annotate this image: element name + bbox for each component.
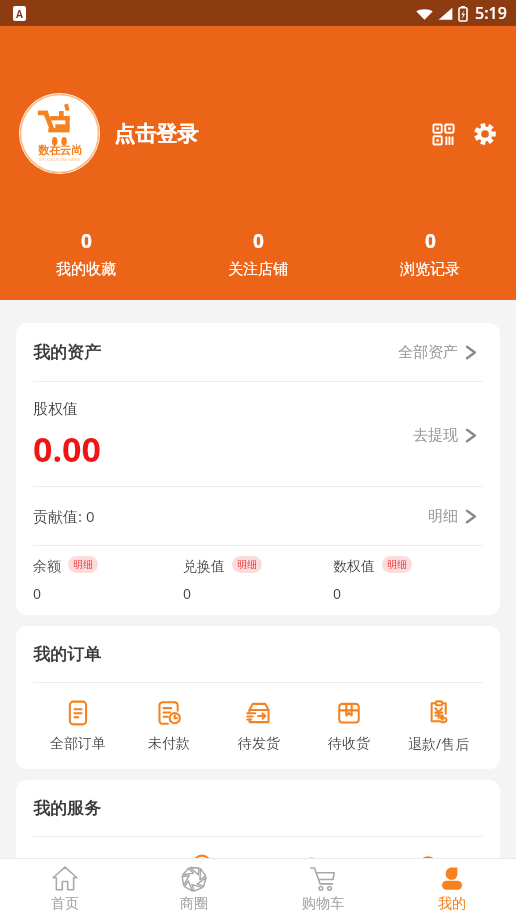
staticText: 我的收藏 <box>56 260 116 279</box>
staticText: 兑换值 <box>183 558 225 576</box>
button[interactable]: 退款/售后 <box>394 683 484 769</box>
staticText: 0 <box>333 584 342 603</box>
button[interactable]: 待发货 <box>214 683 304 769</box>
button[interactable]: 我的 <box>387 859 516 918</box>
button[interactable]: 兑换值 <box>183 546 333 615</box>
staticText: 0 <box>425 228 436 254</box>
staticText: 我的资产 <box>33 342 101 363</box>
staticText: 点击登录 <box>114 121 198 147</box>
button[interactable]: 地址管理 <box>145 837 258 918</box>
staticText: 首页 <box>51 895 79 913</box>
staticText: 商圈 <box>180 895 208 913</box>
staticText: 全部资产 <box>398 343 458 362</box>
staticText: 我的 <box>438 895 466 913</box>
staticText: 待收货 <box>328 735 370 753</box>
button[interactable]: 0 <box>0 224 172 283</box>
staticText: 联系客服 <box>400 889 456 907</box>
button[interactable]: 未付款 <box>123 683 214 769</box>
staticText: 0 <box>81 228 92 254</box>
staticText: 我的团队 <box>287 889 343 907</box>
button[interactable]: 0 <box>172 224 344 283</box>
staticText: 数权值 <box>333 558 375 576</box>
staticText: 明细 <box>428 507 458 526</box>
staticText: 明细 <box>237 558 257 571</box>
staticText: 我的钱包 <box>61 889 117 907</box>
button[interactable]: 数权值 <box>333 546 483 615</box>
staticText: 数在云尚 <box>38 143 82 157</box>
staticText: 退款/售后 <box>408 734 470 753</box>
staticText: 明细 <box>387 558 407 571</box>
button[interactable]: 我的团队 <box>258 837 371 918</box>
staticText: 浏览记录 <box>400 260 460 279</box>
staticText: 0 <box>33 584 42 603</box>
button[interactable]: 股权值 <box>16 382 500 486</box>
button[interactable]: Settings <box>468 117 502 151</box>
staticText: 我的订单 <box>33 644 101 665</box>
button[interactable]: 我的钱包 <box>32 837 145 918</box>
staticText: 0.00 <box>33 426 101 472</box>
staticText: 未付款 <box>148 735 190 753</box>
staticText: 待发货 <box>238 735 280 753</box>
button[interactable]: Avatar <box>19 93 100 174</box>
staticText: 关注店铺 <box>228 260 288 279</box>
staticText: 我的服务 <box>33 798 101 819</box>
staticText: 0 <box>253 228 264 254</box>
button[interactable]: 0 <box>344 224 516 283</box>
staticText: 余额 <box>33 558 61 576</box>
staticText: 购物车 <box>302 895 344 913</box>
staticText: 全部订单 <box>50 735 106 753</box>
button[interactable]: 贡献值: 0 <box>16 487 500 545</box>
button[interactable]: 商圈 <box>129 859 258 918</box>
button[interactable]: 待收货 <box>304 683 394 769</box>
button[interactable]: 余额 <box>33 546 183 615</box>
staticText: A <box>16 7 23 21</box>
button[interactable]: 首页 <box>0 859 129 918</box>
staticText: 地址管理 <box>174 889 230 907</box>
staticText: 明细 <box>73 558 93 571</box>
staticText: SHUZAIYUNSHANG <box>39 157 81 162</box>
staticText: 去提现 <box>413 426 458 445</box>
staticText: 5:19 <box>475 2 507 24</box>
staticText: 0 <box>183 584 192 603</box>
button[interactable]: Scan QR code <box>426 117 460 151</box>
button[interactable]: 我的资产 <box>16 323 500 381</box>
button[interactable]: 全部订单 <box>32 683 123 769</box>
staticText: 股权值 <box>33 400 78 419</box>
button[interactable]: 购物车 <box>258 859 387 918</box>
staticText: 贡献值: 0 <box>33 506 95 526</box>
button[interactable]: 联系客服 <box>371 837 484 918</box>
